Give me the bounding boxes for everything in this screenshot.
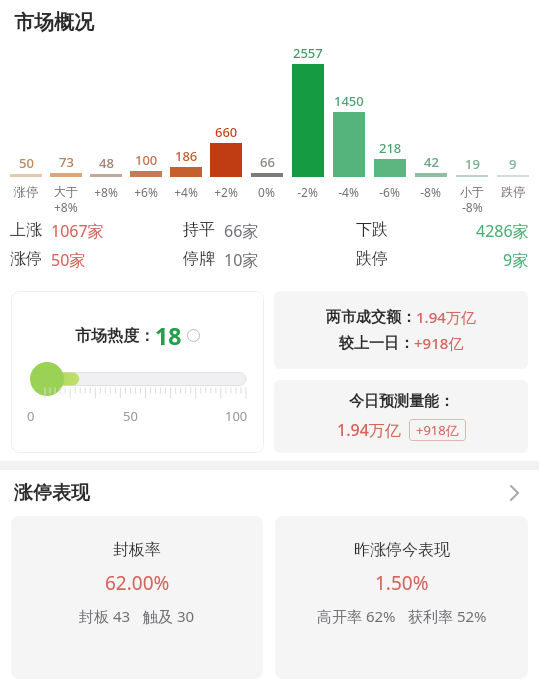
staticText: 小于 xyxy=(460,184,484,199)
staticText: 10家 xyxy=(224,249,259,271)
staticText: 62.00% xyxy=(105,570,170,596)
staticText: -2% xyxy=(297,184,318,200)
staticText: 涨停表现 xyxy=(14,481,503,505)
staticText: 停牌 xyxy=(183,249,215,269)
staticText: 1067家 xyxy=(51,220,104,242)
button[interactable]: 涨停表现 xyxy=(0,470,539,516)
staticText: -4% xyxy=(338,184,359,200)
staticText: 100 xyxy=(225,407,248,425)
staticText: 66 xyxy=(260,153,275,171)
staticText: 42 xyxy=(424,153,439,171)
staticText: 2557 xyxy=(293,44,323,62)
button[interactable]: 今日预测量能： xyxy=(274,380,528,453)
staticText: 50家 xyxy=(51,249,86,271)
staticText: +6% xyxy=(134,184,158,200)
staticText: 市场热度： xyxy=(75,326,155,346)
staticText: 48 xyxy=(99,154,114,172)
staticText: 两市成交额： xyxy=(326,308,416,327)
button[interactable]: 两市成交额： xyxy=(274,291,528,369)
staticText: +918亿 xyxy=(414,333,464,353)
staticText: +918亿 xyxy=(416,421,459,439)
staticText: 下跌 xyxy=(356,220,388,240)
staticText: 100 xyxy=(135,151,158,169)
staticText: -8% xyxy=(420,184,441,200)
staticText: 涨停 xyxy=(10,249,42,269)
staticText: 0% xyxy=(258,184,275,200)
staticText: 封板率 xyxy=(113,540,161,560)
staticText: 涨停 xyxy=(14,184,38,199)
staticText: 1.50% xyxy=(375,570,429,596)
button[interactable]: 市场热度： xyxy=(11,291,264,453)
staticText: 获利率 52% xyxy=(408,606,487,626)
staticText: -8% xyxy=(462,199,483,214)
staticText: 高开率 62% xyxy=(317,606,396,626)
staticText: 50 xyxy=(123,407,138,425)
staticText: 持平 xyxy=(183,220,215,240)
staticText: 9家 xyxy=(503,249,529,271)
staticText: 上涨 xyxy=(10,220,42,240)
staticText: 9 xyxy=(509,155,517,173)
staticText: 1450 xyxy=(334,92,364,110)
other: 更多 xyxy=(503,482,525,504)
staticText: 218 xyxy=(379,139,402,157)
staticText: 昨涨停今表现 xyxy=(354,540,450,560)
button[interactable]: 昨涨停今表现 xyxy=(275,516,528,679)
staticText: 封板 43 xyxy=(79,606,131,626)
staticText: 18 xyxy=(155,320,182,351)
button[interactable]: 封板率 xyxy=(11,516,263,679)
staticText: 19 xyxy=(465,155,480,173)
staticText: +8% xyxy=(54,199,78,214)
staticText: 触及 30 xyxy=(143,606,195,626)
staticText: 较上一日： xyxy=(339,334,414,353)
staticText: 跌停 xyxy=(501,184,525,199)
staticText: -6% xyxy=(379,184,400,200)
staticText: 市场概况 xyxy=(14,10,94,35)
staticText: 1.94万亿 xyxy=(416,307,476,327)
staticText: 50 xyxy=(19,154,34,172)
staticText: 660 xyxy=(215,123,238,141)
staticText: 73 xyxy=(59,153,74,171)
staticText: +8% xyxy=(94,184,118,200)
staticText: 4286家 xyxy=(476,220,529,242)
staticText: 0 xyxy=(27,407,35,425)
staticText: 大于 xyxy=(54,184,78,199)
staticText: 今日预测量能： xyxy=(349,392,454,411)
staticText: 66家 xyxy=(224,220,259,242)
other: 说明 xyxy=(187,329,200,342)
staticText: +4% xyxy=(174,184,198,200)
staticText: 1.94万亿 xyxy=(337,419,401,441)
staticText: 跌停 xyxy=(356,249,388,269)
staticText: 186 xyxy=(175,147,198,165)
staticText: +2% xyxy=(214,184,238,200)
